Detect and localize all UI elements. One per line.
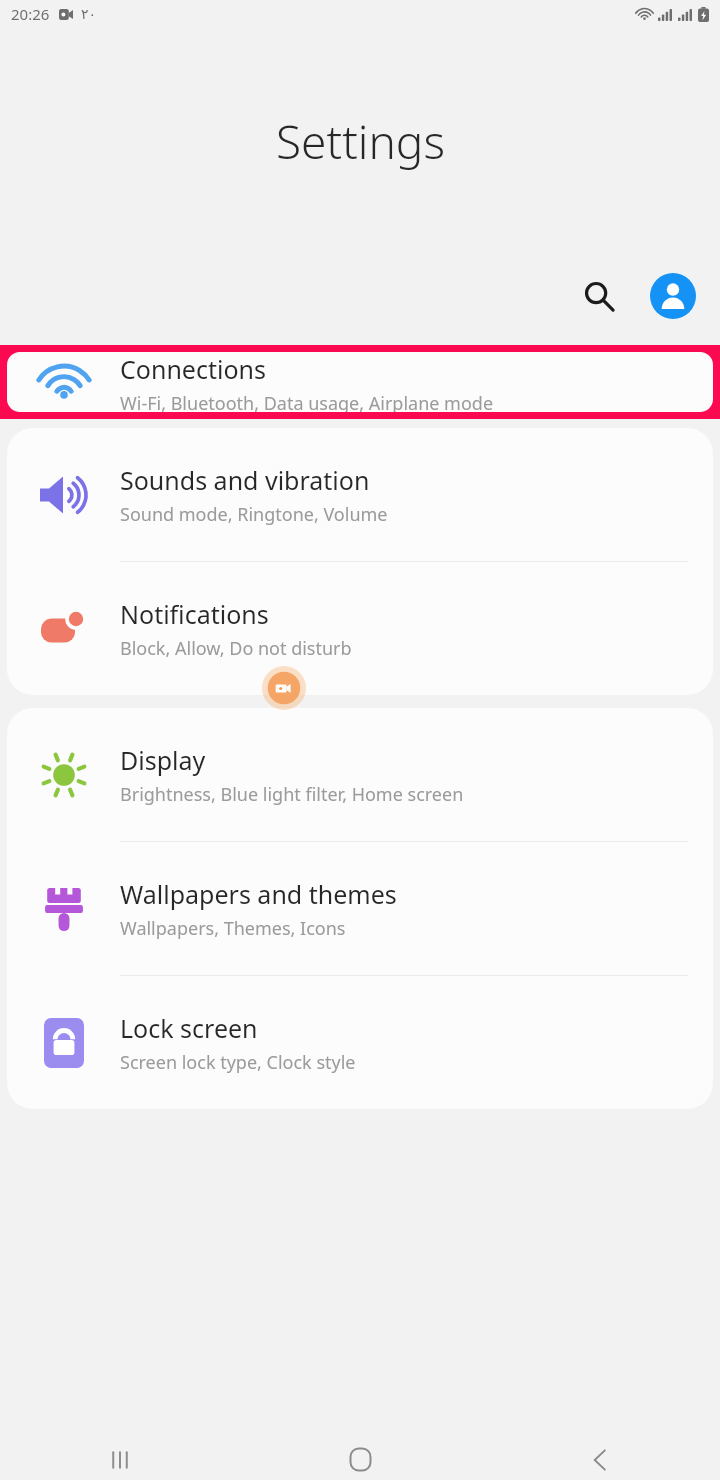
- button[interactable]: Connections: [7, 352, 713, 412]
- staticText: Settings: [276, 110, 445, 173]
- staticText: Sounds and vibration: [120, 463, 370, 497]
- button[interactable]: Connections: [7, 352, 713, 412]
- button[interactable]: Account: [646, 269, 700, 323]
- staticText: Display: [120, 743, 206, 777]
- staticText: Screen lock type, Clock style: [120, 1050, 356, 1075]
- staticText: Lock screen: [120, 1011, 258, 1045]
- staticText: Block, Allow, Do not disturb: [120, 636, 352, 661]
- button[interactable]: Recent apps: [0, 1439, 240, 1480]
- staticText: Wallpapers and themes: [120, 877, 397, 911]
- staticText: Wallpapers, Themes, Icons: [120, 916, 346, 941]
- staticText: Notifications: [120, 597, 269, 631]
- staticText: Sound mode, Ringtone, Volume: [120, 502, 388, 527]
- staticText: Connections: [120, 352, 266, 386]
- button[interactable]: Home: [240, 1439, 480, 1480]
- button[interactable]: Notifications: [7, 562, 713, 695]
- button[interactable]: Lock screen: [7, 976, 713, 1109]
- button[interactable]: Display: [7, 708, 713, 841]
- staticText: Brightness, Blue light filter, Home scre…: [120, 782, 464, 807]
- staticText: Wi-Fi, Bluetooth, Data usage, Airplane m…: [120, 391, 494, 412]
- button[interactable]: Sounds and vibration: [7, 428, 713, 561]
- button[interactable]: Search: [572, 269, 626, 323]
- button[interactable]: Back: [480, 1439, 720, 1480]
- button[interactable]: Wallpapers and themes: [7, 842, 713, 975]
- staticText: 20:26: [11, 4, 50, 24]
- button[interactable]: Screen recorder: [262, 666, 306, 710]
- staticText: ٢٠: [81, 6, 97, 22]
